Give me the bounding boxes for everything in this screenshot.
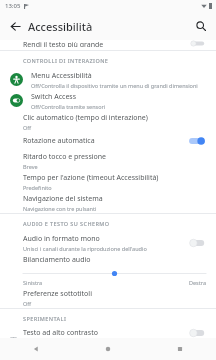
staticText: Tempo per l'azione (timeout Accessibilit… <box>23 173 159 183</box>
button[interactable]: Indietro <box>4 15 26 37</box>
button[interactable]: Non attivo <box>188 238 206 248</box>
staticText: AUDIO E TESTO SU SCHERMO <box>23 220 110 227</box>
staticText: Sinistra <box>23 279 43 286</box>
staticText: 13:05 <box>5 2 21 10</box>
button[interactable]: Menu Accessibilità <box>0 69 216 90</box>
button[interactable]: Attivo <box>188 136 206 146</box>
button[interactable]: Navigazione del sistema <box>0 192 216 213</box>
staticText: Unisci i canali durante la riproduzione … <box>23 245 147 252</box>
staticText: Breve <box>23 163 38 170</box>
staticText: Rotazione automatica <box>23 136 95 146</box>
button[interactable]: Non attivo <box>188 328 206 338</box>
staticText: Off <box>23 300 32 307</box>
staticText: Bilanciamento audio <box>23 255 91 265</box>
staticText: Navigazione del sistema <box>23 194 103 204</box>
staticText: Off/Controlla tramite sensori <box>31 103 106 110</box>
button[interactable]: Indietro <box>0 338 72 360</box>
staticText: Audio in formato mono <box>23 234 100 244</box>
button[interactable]: Tempo per l'azione (timeout Accessibilit… <box>0 171 216 192</box>
staticText: Clic automatico (tempo di interazione) <box>23 113 148 123</box>
staticText: Ritardo tocco e pressione <box>23 152 107 162</box>
staticText: Rendi il testo più grande <box>23 40 104 47</box>
button[interactable]: Preferenze sottotitoli <box>0 287 216 308</box>
staticText: Accessibilità <box>28 19 93 34</box>
button[interactable]: Non attivo <box>188 40 206 47</box>
staticText: CONTROLLI DI INTERAZIONE <box>23 57 109 64</box>
button[interactable]: Clic automatico (tempo di interazione) <box>0 111 216 132</box>
button[interactable]: Bilanciamento audio <box>0 253 216 287</box>
button[interactable]: Panoramica <box>144 338 216 360</box>
staticText: Testo ad alto contrasto <box>23 328 98 338</box>
staticText: Predefinito <box>23 184 52 191</box>
button[interactable]: Audio in formato mono <box>0 232 216 253</box>
button[interactable]: Rotazione automatica <box>0 132 216 150</box>
staticText: Menu Accessibilità <box>31 71 92 81</box>
button[interactable]: Ritardo tocco e pressione <box>0 150 216 171</box>
staticText: Off/Controlla il dispositivo tramite un … <box>31 82 198 89</box>
staticText: Navigazione con tre pulsanti <box>23 205 97 212</box>
button[interactable]: Home <box>72 338 144 360</box>
staticText: Off <box>23 124 32 131</box>
staticText: SPERIMENTALI <box>23 315 67 322</box>
staticText: Preferenze sottotitoli <box>23 289 92 299</box>
button[interactable]: Rendi il testo più grande <box>0 40 216 50</box>
staticText: Switch Access <box>31 92 77 102</box>
button[interactable]: Cerca <box>190 15 212 37</box>
button[interactable]: Testo ad alto contrasto <box>0 327 216 338</box>
staticText: Destra <box>189 279 206 286</box>
button[interactable]: Switch Access <box>0 90 216 111</box>
